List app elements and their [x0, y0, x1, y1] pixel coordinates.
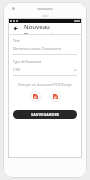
staticText: Chargez un document PDF/Image [13, 82, 77, 87]
button[interactable]: Choisir un fichier PDF [30, 91, 41, 102]
staticText: Type de Document [13, 60, 42, 64]
staticText: CNI [13, 67, 20, 72]
staticText: Nommez votre Document [13, 46, 62, 51]
staticText: Nouveau Document [24, 23, 79, 34]
button[interactable]: Choisir le type de document [13, 67, 77, 76]
button[interactable]: Retour [11, 24, 20, 33]
staticText: Titre [13, 39, 20, 43]
staticText: SAUVEGARDER [31, 112, 60, 117]
button[interactable]: Choisir une image [50, 91, 61, 102]
button[interactable]: Nommez votre Document [13, 46, 77, 55]
button[interactable]: SAUVEGARDER [13, 110, 77, 119]
